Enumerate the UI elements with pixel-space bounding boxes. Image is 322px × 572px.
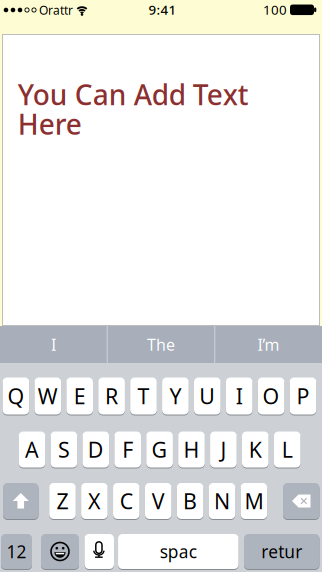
staticText: Q (7, 382, 24, 410)
staticText: D (88, 435, 104, 464)
button[interactable]: Dictate (84, 534, 114, 569)
staticText: V (152, 487, 165, 515)
staticText: J (220, 435, 226, 464)
staticText: E (74, 382, 86, 410)
staticText: S (58, 435, 70, 464)
staticText: Y (169, 382, 181, 410)
staticText: O (263, 382, 280, 410)
button[interactable]: M (241, 483, 267, 519)
staticText: W (38, 382, 58, 410)
button[interactable]: space (118, 534, 239, 569)
staticText: Here (18, 105, 82, 143)
staticText: Orattr (39, 2, 73, 18)
button[interactable]: Text input (2, 34, 320, 326)
staticText: You Can Add Text (18, 76, 249, 113)
staticText: B (183, 487, 197, 515)
button[interactable]: U (194, 377, 221, 414)
button[interactable]: Q (3, 377, 29, 414)
button[interactable]: L (274, 431, 300, 467)
staticText: X (88, 487, 101, 515)
button[interactable]: W (34, 377, 61, 414)
staticText: L (282, 435, 293, 464)
staticText: U (199, 382, 215, 410)
staticText: I (51, 334, 56, 355)
button[interactable]: G (146, 431, 173, 467)
button[interactable]: I (1, 326, 107, 363)
button[interactable]: E (66, 377, 93, 414)
staticText: The (147, 334, 175, 355)
staticText: H (183, 435, 199, 464)
staticText: 12 (6, 540, 26, 563)
button[interactable]: P (290, 377, 316, 414)
button[interactable]: X (81, 483, 108, 519)
staticText: M (244, 487, 263, 515)
staticText: spac (160, 540, 197, 563)
staticText: retur (261, 540, 302, 563)
button[interactable]: O (258, 377, 284, 414)
button[interactable]: 12 (1, 534, 32, 569)
button[interactable]: I’m (215, 326, 321, 363)
button[interactable]: J (210, 431, 237, 467)
button[interactable]: Shift (3, 483, 38, 519)
button[interactable]: K (242, 431, 269, 467)
button[interactable]: R (98, 377, 125, 414)
staticText: 100 (263, 1, 287, 18)
button[interactable]: I (226, 377, 252, 414)
staticText: C (120, 487, 133, 515)
button[interactable]: The (108, 326, 214, 363)
button[interactable]: S (51, 431, 77, 467)
staticText: I’m (257, 334, 279, 355)
staticText: I (236, 382, 243, 410)
button[interactable]: Delete (283, 483, 319, 519)
button[interactable]: F (114, 431, 141, 467)
staticText: G (152, 435, 168, 464)
button[interactable]: Y (162, 377, 189, 414)
staticText: K (249, 435, 262, 464)
staticText: R (105, 382, 118, 410)
staticText: F (122, 435, 133, 464)
button[interactable]: Z (49, 483, 76, 519)
staticText: T (137, 382, 149, 410)
button[interactable]: C (113, 483, 139, 519)
button[interactable]: D (82, 431, 109, 467)
staticText: Z (56, 487, 68, 515)
button[interactable]: Emoji (41, 534, 79, 569)
button[interactable]: return (244, 534, 319, 569)
button[interactable]: H (178, 431, 205, 467)
staticText: A (25, 435, 39, 464)
button[interactable]: T (130, 377, 157, 414)
button[interactable]: N (209, 483, 235, 519)
staticText: P (296, 382, 309, 410)
button[interactable]: A (19, 431, 45, 467)
staticText: N (214, 487, 230, 515)
button[interactable]: B (177, 483, 203, 519)
staticText: 9:41 (148, 1, 176, 18)
button[interactable]: V (145, 483, 171, 519)
